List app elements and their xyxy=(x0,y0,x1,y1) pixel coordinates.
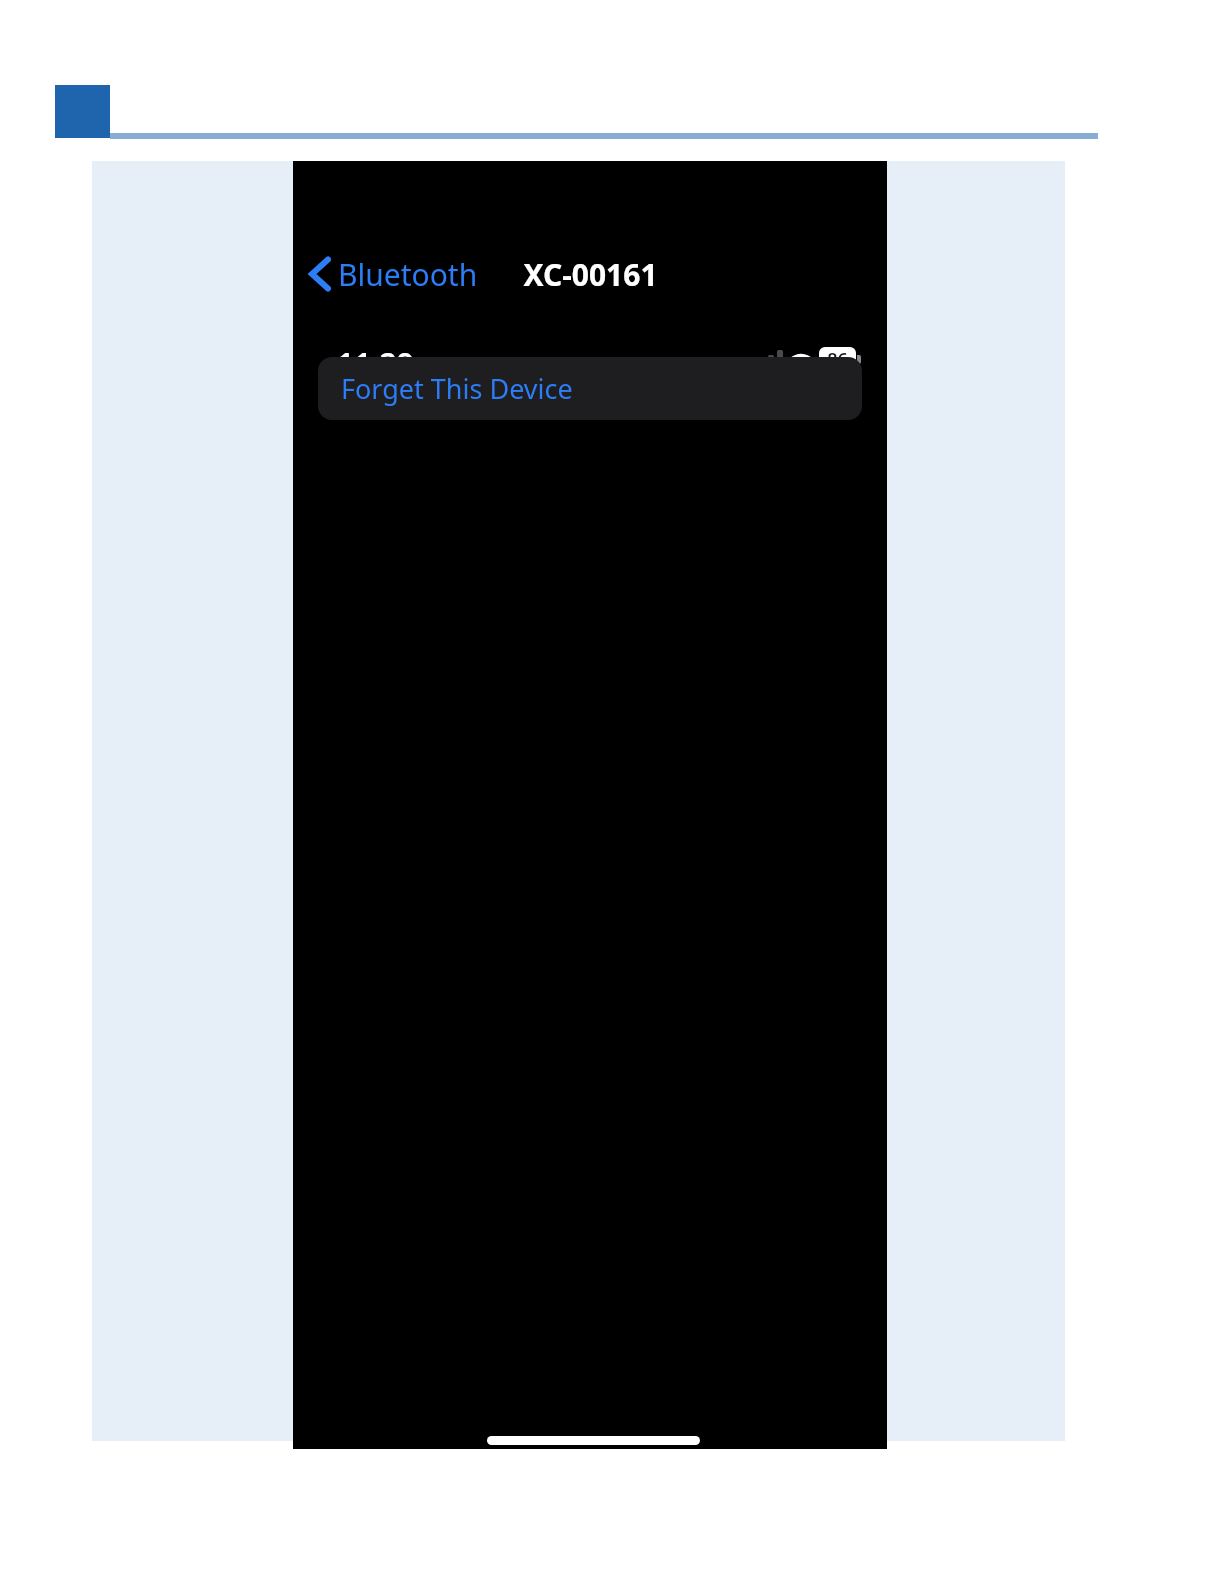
staticText: Bluetooth xyxy=(338,254,478,295)
staticText: 86 xyxy=(827,347,848,371)
staticText: 11:29 xyxy=(337,343,414,384)
staticText: Forget This Device xyxy=(341,370,573,407)
button[interactable]: Bluetooth xyxy=(301,245,490,303)
staticText: XC-00161 xyxy=(523,254,658,295)
button[interactable]: Forget This Device xyxy=(318,357,862,420)
other: Home indicator xyxy=(487,1436,700,1445)
